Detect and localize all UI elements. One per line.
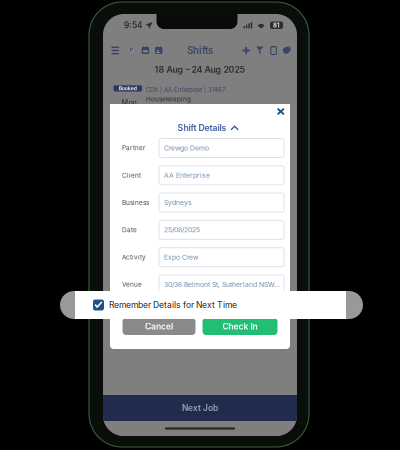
staticText: CDX | AA Enterprise | 31467 [146,86,225,93]
button[interactable]: Next Job [103,395,297,421]
staticText: Shift Details [177,122,226,133]
staticText: AA Enterprise [164,171,210,179]
button[interactable]: Booked [103,78,297,104]
staticText: 81 [273,21,280,29]
button[interactable]: Calendar [138,38,153,63]
staticText: Cancel [145,321,173,332]
button[interactable]: Menu [108,38,123,63]
staticText: Business [122,199,149,206]
button[interactable]: Profile [124,38,139,63]
staticText: Next Job [182,403,218,413]
button[interactable]: Cancel [122,318,195,335]
staticText: Crewgo Demo [164,144,209,152]
button[interactable]: Add [239,38,254,63]
staticText: Expo Crew [164,253,199,261]
button[interactable]: Roster [151,38,166,63]
staticText: Venue [122,281,142,288]
staticText: P [129,47,133,54]
staticText: Check In [222,321,257,332]
button[interactable]: Check In [202,318,277,335]
staticText: 18 Aug – 24 Aug 2025 [154,64,245,75]
staticText: Housekeeping [146,95,191,103]
staticText: Mon [121,98,136,107]
button[interactable]: Shift Details [177,122,239,133]
button[interactable]: Filter [252,38,267,63]
staticText: Date [122,226,137,234]
staticText: 30/36 Belmont St, Sutherland NSW… [164,280,280,289]
staticText: 25/08/2025 [164,226,200,234]
staticText: Booked [119,85,137,91]
button[interactable]: Remember Details for Next Time [93,299,104,310]
staticText: Partner [122,144,145,152]
button[interactable]: Notes [266,38,281,63]
staticText: Client [122,171,141,179]
button[interactable]: Messages [279,38,294,63]
staticText: Remember Details for Next Time [109,300,237,310]
staticText: 9:54 [124,20,143,30]
staticText: Sydneys [164,198,192,207]
button[interactable]: Close [274,105,287,117]
staticText: Activity [122,253,146,261]
staticText: Shifts [187,45,213,56]
